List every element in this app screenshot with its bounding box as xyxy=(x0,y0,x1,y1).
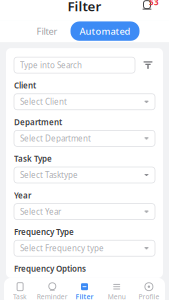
staticText: Select Year xyxy=(20,206,61,217)
button[interactable]: Filter options xyxy=(141,57,155,73)
button[interactable]: Filter xyxy=(68,278,101,300)
staticText: Select Tasktype xyxy=(20,170,78,180)
button[interactable]: Automated xyxy=(70,21,139,41)
button[interactable]: Notifications xyxy=(139,0,161,17)
button[interactable]: Profile xyxy=(133,278,165,300)
button[interactable]: Select Department xyxy=(14,130,155,146)
staticText: Menu xyxy=(108,292,126,300)
staticText: Frequency Options xyxy=(14,263,86,274)
staticText: Automated xyxy=(79,25,130,37)
button[interactable]: Menu xyxy=(101,278,133,300)
staticText: Client xyxy=(14,80,36,91)
staticText: Filter xyxy=(75,292,93,300)
staticText: Year xyxy=(14,190,31,201)
staticText: Task xyxy=(13,292,27,300)
staticText: Filter xyxy=(67,0,101,15)
staticText: Department xyxy=(14,117,62,127)
staticText: Task Type xyxy=(14,153,52,164)
staticText: 53 xyxy=(149,0,159,7)
button[interactable]: Select Frequency type xyxy=(14,240,155,256)
staticText: Select Frequency type xyxy=(20,243,104,253)
button[interactable]: Select Client xyxy=(14,94,155,110)
staticText: Frequency Type xyxy=(14,227,74,237)
staticText: Profile xyxy=(138,292,159,300)
button[interactable]: Select Year xyxy=(14,204,155,220)
staticText: Select Client xyxy=(20,96,67,107)
button[interactable]: Task xyxy=(4,278,36,300)
staticText: Select Department xyxy=(20,133,91,144)
button[interactable]: Filter xyxy=(29,22,64,40)
staticText: Reminder xyxy=(37,292,68,300)
button[interactable]: Select Tasktype xyxy=(14,167,155,183)
staticText: Type into Search xyxy=(20,60,82,70)
button[interactable]: Reminder xyxy=(36,278,68,300)
staticText: Filter xyxy=(36,25,57,37)
